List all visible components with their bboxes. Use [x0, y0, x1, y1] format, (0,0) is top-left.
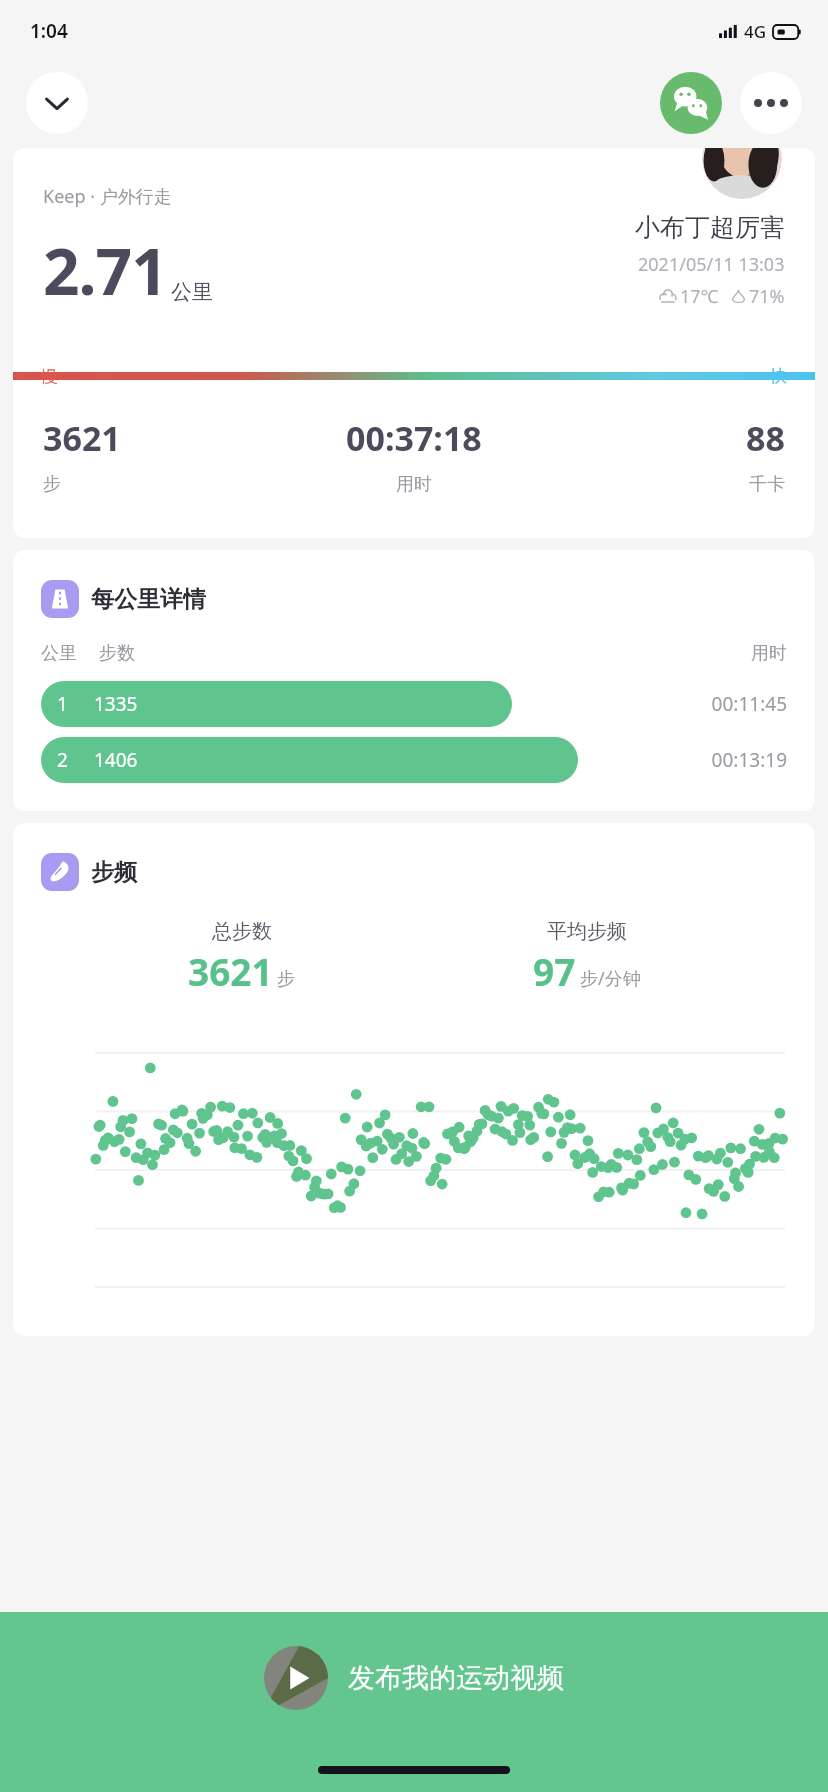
button[interactable]: 1: [41, 681, 787, 727]
staticText: 步频: [91, 858, 137, 887]
staticText: 2.71: [43, 227, 167, 314]
staticText: 2: [57, 747, 68, 773]
staticText: 发布我的运动视频: [348, 1661, 564, 1695]
staticText: 1:04: [30, 18, 68, 44]
button[interactable]: Keep · 户外行走: [13, 148, 815, 538]
staticText: 步: [43, 473, 61, 496]
staticText: 1406: [94, 747, 138, 773]
staticText: 用时: [751, 642, 787, 665]
button[interactable]: More options: [740, 72, 802, 134]
staticText: 00:11:45: [677, 691, 787, 717]
staticText: 88: [746, 415, 785, 461]
button[interactable]: 每公里详情: [13, 550, 815, 811]
staticText: 步: [277, 968, 295, 991]
staticText: 1: [57, 691, 68, 717]
staticText: 千卡: [749, 473, 785, 496]
staticText: 公里: [41, 642, 77, 665]
staticText: 1335: [94, 691, 138, 717]
staticText: 慢: [41, 366, 58, 387]
staticText: 每公里详情: [91, 585, 206, 614]
staticText: 3621: [43, 415, 121, 461]
staticText: 用时: [396, 473, 432, 496]
button[interactable]: 步频: [13, 823, 815, 1336]
staticText: 步/分钟: [580, 966, 641, 991]
staticText: 71%: [749, 284, 785, 309]
staticText: 公里: [171, 279, 213, 305]
staticText: 97: [533, 946, 576, 996]
staticText: 4G: [744, 20, 767, 43]
staticText: 17℃: [680, 284, 719, 309]
button[interactable]: 2: [41, 737, 787, 783]
staticText: 平均步频: [547, 919, 627, 944]
button[interactable]: Share to WeChat: [660, 72, 722, 134]
staticText: 快: [770, 366, 787, 387]
staticText: Keep · 户外行走: [43, 184, 172, 209]
staticText: 00:37:18: [346, 415, 482, 461]
button[interactable]: Collapse: [26, 72, 88, 134]
staticText: 小布丁超厉害: [635, 212, 785, 243]
staticText: 步数: [99, 642, 135, 665]
staticText: 2021/05/11 13:03: [638, 252, 785, 277]
staticText: 00:13:19: [677, 747, 787, 773]
button[interactable]: User avatar: [702, 148, 782, 199]
staticText: 3621: [188, 946, 273, 996]
button[interactable]: 发布我的运动视频: [256, 1642, 572, 1714]
staticText: 总步数: [212, 919, 272, 944]
